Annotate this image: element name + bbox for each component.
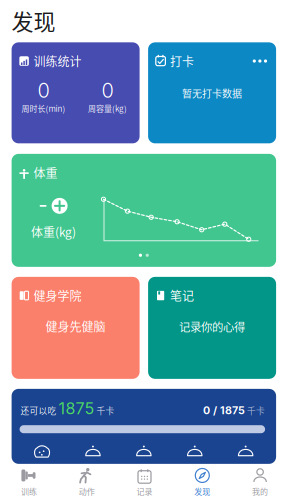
staticText: 动作 bbox=[79, 485, 95, 497]
staticText: 记录你的心得 bbox=[179, 318, 245, 335]
staticText: 周时长(min) bbox=[22, 103, 66, 114]
staticText: 笔记 bbox=[170, 287, 194, 304]
button[interactable]: 训练统计 bbox=[12, 42, 140, 143]
staticText: 训练 bbox=[21, 485, 37, 497]
staticText: 0 bbox=[102, 78, 114, 103]
staticText: 体重(kg) bbox=[31, 223, 76, 240]
button[interactable]: 笔记 bbox=[148, 277, 276, 379]
staticText: 还可以吃 bbox=[21, 404, 59, 417]
button[interactable]: 健身学院 bbox=[12, 277, 140, 379]
staticText: 打卡 bbox=[170, 52, 194, 70]
staticText: 周容量(kg) bbox=[88, 103, 127, 114]
staticText: 0 / 1875 bbox=[203, 404, 245, 417]
staticText: 记录 bbox=[136, 485, 152, 497]
button[interactable]: 我的 bbox=[231, 463, 289, 500]
button[interactable]: 运动 bbox=[220, 444, 271, 458]
button[interactable]: 记录 bbox=[116, 463, 173, 500]
staticText: 健身先健脑 bbox=[46, 317, 106, 335]
button[interactable]: 晚餐 bbox=[118, 444, 169, 458]
button[interactable]: 打卡 bbox=[148, 42, 276, 143]
button[interactable]: 发现 bbox=[173, 463, 231, 500]
staticText: 暂无打卡数据 bbox=[182, 86, 242, 100]
staticText: 发现 bbox=[194, 485, 210, 497]
button[interactable]: 早餐 bbox=[17, 444, 67, 458]
staticText: 0 bbox=[38, 78, 50, 103]
staticText: 体重 bbox=[34, 164, 58, 181]
button[interactable]: 动作 bbox=[58, 463, 116, 500]
button[interactable]: 体重 bbox=[12, 154, 276, 267]
staticText: 训练统计 bbox=[34, 52, 82, 70]
staticText: 发现 bbox=[11, 4, 55, 36]
staticText: 1875 bbox=[59, 399, 95, 418]
staticText: 千卡 bbox=[95, 404, 115, 417]
staticText: 我的 bbox=[252, 485, 268, 497]
button[interactable]: 训练 bbox=[0, 463, 58, 500]
staticText: 健身学院 bbox=[34, 287, 82, 304]
button[interactable]: 加餐 bbox=[169, 444, 220, 458]
staticText: 千卡 bbox=[245, 404, 265, 417]
button[interactable]: 午餐 bbox=[67, 444, 118, 458]
